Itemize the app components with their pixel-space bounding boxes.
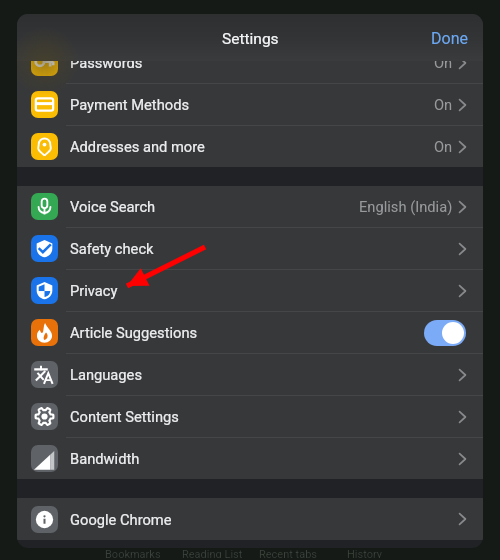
- staticText: On: [434, 96, 453, 113]
- staticText: Bookmarks: [105, 548, 161, 558]
- button[interactable]: Voice Search: [17, 186, 483, 227]
- staticText: Reading List: [182, 548, 243, 558]
- button[interactable]: Passwords: [17, 42, 483, 83]
- staticText: Safety check: [70, 240, 154, 257]
- staticText: Recent tabs: [259, 548, 318, 558]
- button[interactable]: Article Suggestions toggle: [424, 320, 466, 346]
- staticText: History: [347, 548, 382, 558]
- button[interactable]: Privacy: [17, 270, 483, 311]
- staticText: English (India): [359, 198, 453, 215]
- button[interactable]: History: [339, 547, 390, 559]
- button[interactable]: Languages: [17, 354, 483, 395]
- staticText: Privacy: [70, 282, 118, 299]
- button[interactable]: Recent tabs: [251, 547, 326, 559]
- staticText: Google Chrome: [70, 511, 172, 528]
- staticText: Content Settings: [70, 408, 179, 425]
- button[interactable]: Safety check: [17, 228, 483, 269]
- staticText: Settings: [222, 30, 279, 48]
- button[interactable]: Payment Methods: [17, 84, 483, 125]
- button[interactable]: Bookmarks: [97, 547, 169, 559]
- button[interactable]: Content Settings: [17, 396, 483, 437]
- button[interactable]: Addresses and more: [17, 126, 483, 167]
- staticText: Languages: [70, 366, 142, 383]
- staticText: On: [434, 138, 453, 155]
- staticText: Passwords: [70, 54, 143, 71]
- staticText: Done: [431, 29, 468, 48]
- staticText: Payment Methods: [70, 96, 189, 113]
- staticText: Article Suggestions: [70, 324, 198, 341]
- button[interactable]: Article Suggestions: [17, 312, 483, 353]
- button[interactable]: Reading List: [174, 547, 251, 559]
- staticText: Addresses and more: [70, 138, 205, 155]
- staticText: Bandwidth: [70, 450, 140, 467]
- staticText: Voice Search: [70, 198, 156, 215]
- staticText: On: [434, 54, 453, 71]
- button[interactable]: Bandwidth: [17, 438, 483, 479]
- button[interactable]: Google Chrome: [17, 498, 483, 540]
- button[interactable]: Done: [416, 19, 483, 58]
